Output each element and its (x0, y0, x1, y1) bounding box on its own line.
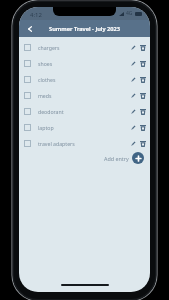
button[interactable]: clothes (19, 71, 150, 87)
button[interactable]: Edit (129, 107, 138, 116)
button[interactable]: Delete (138, 107, 147, 116)
staticText: meds (38, 92, 52, 99)
staticText: deodorant (38, 108, 64, 115)
staticText: clothes (38, 76, 56, 83)
staticText: 4:12 (30, 11, 42, 19)
staticText: Summer Travel - July 2023 (49, 25, 121, 33)
button[interactable]: Delete (138, 139, 147, 148)
button[interactable]: Delete (138, 91, 147, 100)
button[interactable]: Add entry (104, 152, 144, 164)
button[interactable]: Edit (129, 139, 138, 148)
button[interactable]: travel adapters (19, 135, 150, 151)
staticText: laptop (38, 124, 54, 131)
button[interactable]: Edit (129, 75, 138, 84)
button[interactable]: chargers (19, 39, 150, 55)
button[interactable]: Delete (138, 59, 147, 68)
staticText: 4G (126, 10, 133, 17)
button[interactable]: meds (19, 87, 150, 103)
button[interactable]: shoes (19, 55, 150, 71)
button[interactable]: Back (24, 23, 36, 35)
button[interactable]: Delete (138, 123, 147, 132)
button[interactable]: Edit (129, 123, 138, 132)
button[interactable]: deodorant (19, 103, 150, 119)
staticText: chargers (38, 44, 60, 51)
staticText: travel adapters (38, 140, 75, 147)
button[interactable]: Delete (138, 43, 147, 52)
button[interactable]: Edit (129, 91, 138, 100)
button[interactable]: laptop (19, 119, 150, 135)
staticText: Add entry (104, 155, 129, 162)
staticText: shoes (38, 60, 53, 67)
button[interactable]: Delete (138, 75, 147, 84)
button[interactable]: Edit (129, 59, 138, 68)
button[interactable]: Edit (129, 43, 138, 52)
